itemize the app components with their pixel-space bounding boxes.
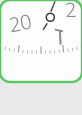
staticText: 20 [9, 9, 31, 36]
staticText: 2 [65, 0, 76, 23]
